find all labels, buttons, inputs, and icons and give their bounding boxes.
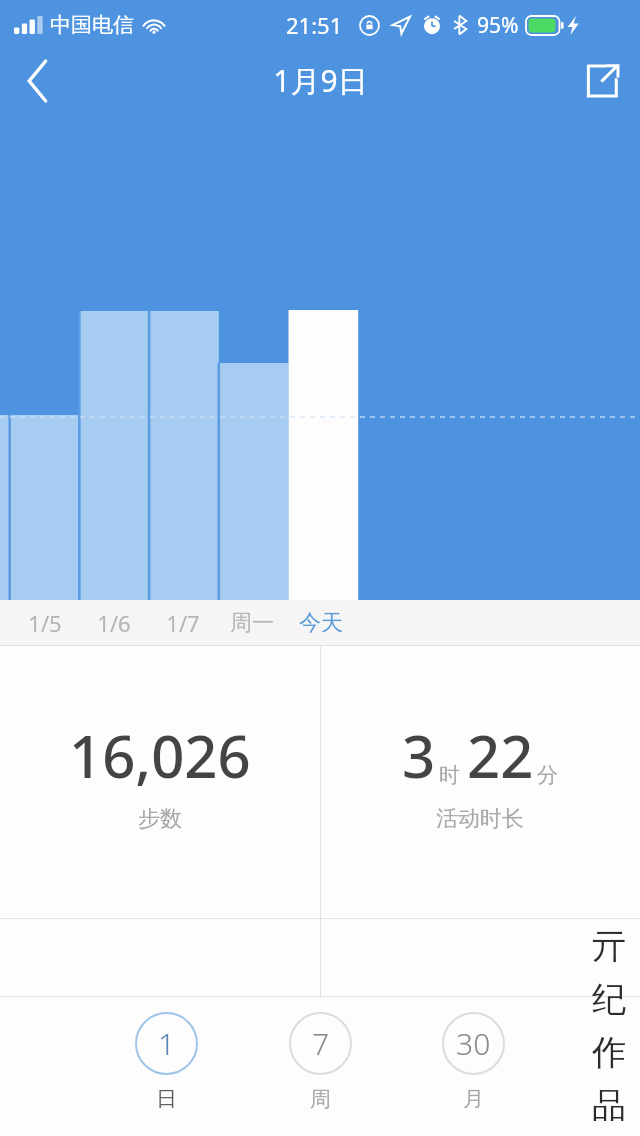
- staticText: 1/7: [166, 608, 200, 638]
- button[interactable]: 周一: [217, 600, 286, 646]
- button[interactable]: 16,026: [0, 646, 320, 918]
- button[interactable]: [320, 919, 640, 996]
- staticText: 作: [592, 1031, 626, 1074]
- staticText: 时: [439, 762, 460, 788]
- staticText: 分: [537, 762, 558, 788]
- staticText: 今天: [299, 609, 343, 637]
- button[interactable]: Share: [564, 43, 640, 119]
- staticText: 日: [156, 1086, 177, 1112]
- button[interactable]: 1/7: [148, 600, 217, 646]
- button[interactable]: 1/6: [79, 600, 148, 646]
- staticText: 95%: [477, 11, 519, 40]
- staticText: 周: [310, 1086, 331, 1112]
- staticText: 品: [592, 1084, 626, 1126]
- button[interactable]: 7: [272, 1012, 368, 1112]
- staticText: 1月9日: [273, 60, 368, 101]
- staticText: 活动时长: [436, 805, 524, 833]
- staticText: 21:51: [286, 10, 343, 40]
- staticText: 30: [456, 1023, 491, 1064]
- button[interactable]: 1: [118, 1012, 214, 1112]
- staticText: 3: [402, 716, 436, 795]
- button[interactable]: 3: [320, 646, 640, 918]
- staticText: 步数: [138, 805, 182, 833]
- button[interactable]: 1/5: [10, 600, 79, 646]
- staticText: 月: [463, 1086, 484, 1112]
- staticText: 1/5: [28, 608, 62, 638]
- button[interactable]: 30: [425, 1012, 521, 1112]
- button[interactable]: Back: [0, 43, 76, 119]
- staticText: 1: [158, 1023, 176, 1064]
- button[interactable]: 今天: [286, 600, 355, 646]
- staticText: 22: [467, 716, 534, 795]
- staticText: 16,026: [69, 716, 251, 795]
- staticText: 周一: [230, 609, 274, 637]
- staticText: 1/6: [97, 608, 131, 638]
- staticText: 7: [312, 1023, 330, 1064]
- staticText: 纪: [592, 978, 626, 1021]
- staticText: 亓: [592, 925, 626, 968]
- staticText: 中国电信: [50, 12, 134, 38]
